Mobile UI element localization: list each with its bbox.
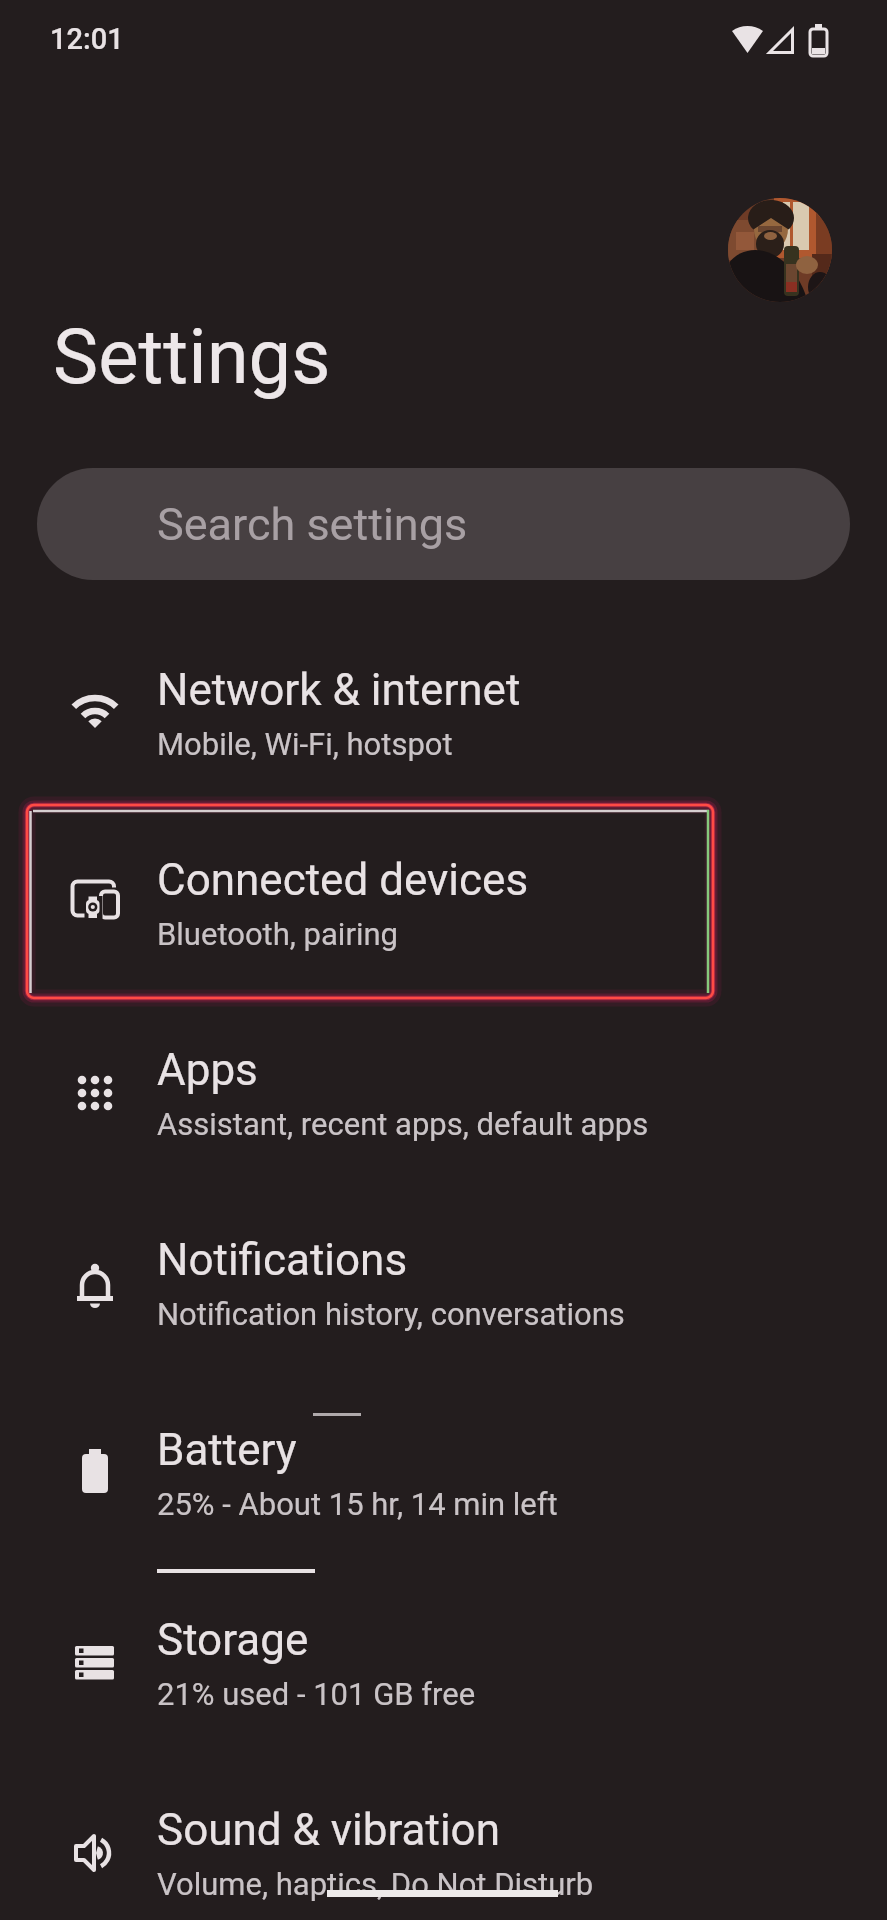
staticText: Sound & vibration	[157, 1804, 500, 1856]
button[interactable]: Storage	[0, 1568, 887, 1758]
staticText: Mobile, Wi-Fi, hotspot	[157, 726, 453, 762]
staticText: Volume, haptics, Do Not Disturb	[157, 1866, 594, 1902]
staticText: Notification history, conversations	[157, 1296, 625, 1332]
button[interactable]	[728, 198, 832, 302]
staticText: Assistant, recent apps, default apps	[157, 1106, 649, 1142]
staticText: Storage	[157, 1614, 309, 1666]
staticText: Connected devices	[157, 854, 529, 906]
staticText: 21% used - 101 GB free	[157, 1676, 476, 1712]
staticText: Bluetooth, pairing	[157, 916, 398, 952]
staticText: Settings	[53, 312, 331, 401]
staticText: Battery	[157, 1424, 297, 1476]
staticText: Notifications	[157, 1234, 408, 1286]
button[interactable]: Apps	[0, 998, 887, 1188]
staticText: Search settings	[157, 498, 468, 551]
button[interactable]: Network & internet	[0, 618, 887, 808]
button[interactable]: Sound & vibration	[0, 1758, 887, 1920]
staticText: 25% - About 15 hr, 14 min left	[157, 1486, 558, 1522]
button[interactable]: Connected devices	[0, 808, 887, 998]
button[interactable]: Notifications	[0, 1188, 887, 1378]
button[interactable]: Battery	[0, 1378, 887, 1568]
staticText: 12:01	[50, 22, 124, 56]
staticText: Network & internet	[157, 664, 521, 716]
staticText: Apps	[157, 1044, 258, 1096]
button[interactable]: Search settings	[37, 468, 850, 580]
